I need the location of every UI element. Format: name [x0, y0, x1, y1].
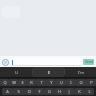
staticText: K: [78, 89, 81, 94]
button[interactable]: K: [74, 88, 84, 95]
button[interactable]: I'm: [65, 67, 96, 77]
button[interactable]: I: [33, 67, 64, 77]
button[interactable]: L: [84, 88, 94, 95]
staticText: L: [88, 89, 91, 94]
staticText: D: [28, 89, 31, 94]
button[interactable]: E: [18, 79, 27, 86]
staticText: S: [17, 89, 20, 94]
button[interactable]: P: [86, 79, 96, 86]
button[interactable]: S: [13, 88, 24, 95]
button[interactable]: D: [24, 88, 34, 95]
staticText: Send: [85, 60, 93, 64]
staticText: T: [40, 80, 43, 85]
button[interactable]: F: [34, 88, 44, 95]
staticText: I: [70, 80, 72, 85]
staticText: Y: [50, 80, 53, 85]
button[interactable]: U: [56, 79, 66, 86]
staticText: P: [90, 80, 93, 85]
button[interactable]: W: [9, 79, 18, 86]
staticText: H: [58, 89, 61, 94]
staticText: I'm: [78, 70, 84, 75]
staticText: E: [21, 80, 24, 85]
button[interactable]: I: [66, 79, 76, 86]
staticText: A: [6, 89, 9, 94]
button[interactable]: R: [27, 79, 36, 86]
staticText: G: [48, 89, 51, 94]
staticText: W: [12, 80, 16, 85]
button[interactable]: J: [64, 88, 74, 95]
button[interactable]: O: [76, 79, 86, 86]
staticText: J: [68, 89, 70, 94]
button[interactable]: Send: [83, 59, 94, 65]
staticText: U: [15, 70, 18, 75]
staticText: I: [48, 70, 50, 75]
staticText: U: [60, 80, 63, 85]
button[interactable]: Add attachment: [1, 58, 9, 66]
button[interactable]: [10, 58, 82, 66]
button[interactable]: Q: [0, 79, 9, 86]
staticText: O: [79, 80, 83, 85]
button[interactable]: G: [44, 88, 54, 95]
button[interactable]: U: [0, 67, 32, 77]
staticText: R: [30, 80, 33, 85]
staticText: Q: [3, 80, 7, 85]
staticText: F: [38, 89, 41, 94]
button[interactable]: H: [54, 88, 64, 95]
button[interactable]: T: [36, 79, 46, 86]
button[interactable]: Y: [46, 79, 56, 86]
button[interactable]: A: [2, 88, 13, 95]
